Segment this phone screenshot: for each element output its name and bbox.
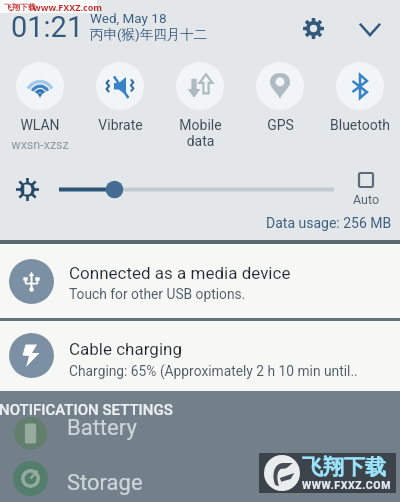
button[interactable]: Mobile data [160,62,240,149]
button[interactable]: Cable charging [0,321,400,391]
staticText: Mobile data [179,117,222,149]
staticText: Storage [67,470,143,496]
staticText: Auto [353,192,380,207]
staticText: Data usage: 256 MB [266,215,392,231]
button[interactable]: GPS [240,62,320,133]
staticText: Connected as a media device [69,263,291,283]
staticText: Vibrate [98,117,143,133]
staticText: Charging: 65% (Approximately 2 h 10 min … [69,363,358,379]
staticText: 丙申(猴)年四月十二 [90,26,208,43]
staticText: NOTIFICATION SETTINGS [0,401,173,419]
button[interactable]: Vibrate [80,62,160,133]
button[interactable]: Settings [293,8,334,49]
staticText: wxsn-xzsz [11,137,69,152]
staticText: 飞翔下载 [4,2,36,12]
staticText: GPS [267,117,294,133]
staticText: Touch for other USB options. [69,286,246,302]
staticText: Wed, May 18 [90,10,167,26]
button[interactable]: Collapse quick settings [349,8,390,49]
button[interactable]: Bluetooth [320,62,400,133]
staticText: www.FXXZ.com [33,1,103,13]
button[interactable]: Auto brightness [345,172,387,207]
staticText: WWW.FXXZ.COM [302,479,391,491]
button[interactable]: WLAN [0,62,80,152]
staticText: 01:21 [11,10,84,44]
staticText: Bluetooth [330,117,390,133]
button[interactable]: Connected as a media device [0,244,400,318]
staticText: 飞翔下载 [302,454,386,480]
staticText: Cable charging [69,339,182,359]
staticText: Battery [67,415,137,441]
staticText: WLAN [20,117,60,133]
